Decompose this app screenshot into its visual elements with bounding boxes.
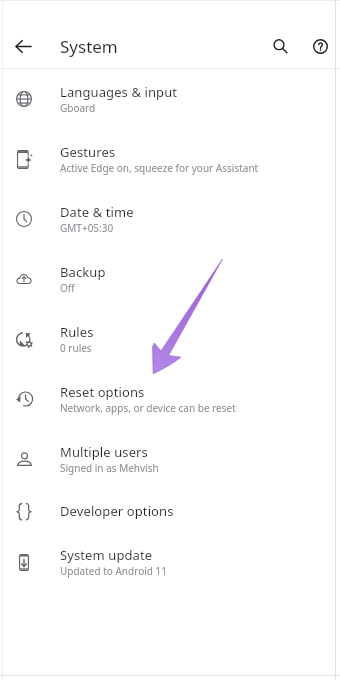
button[interactable]: Help [302, 28, 339, 65]
staticText: GMT+05:30 [60, 221, 114, 235]
button[interactable]: Backup [0, 249, 340, 309]
staticText: Languages & input [60, 83, 178, 101]
staticText: Reset options [60, 383, 145, 401]
staticText: Date & time [60, 203, 134, 221]
staticText: System update [60, 546, 153, 564]
button[interactable]: System update [0, 532, 340, 592]
staticText: Rules [60, 323, 94, 341]
button[interactable]: Gestures [0, 129, 340, 189]
staticText: Multiple users [60, 443, 148, 461]
staticText: Backup [60, 263, 106, 281]
button[interactable]: Developer options [0, 489, 340, 532]
button[interactable]: Back [5, 28, 42, 65]
staticText: Gboard [60, 101, 96, 115]
button[interactable]: Date & time [0, 189, 340, 249]
staticText: Network, apps, or device can be reset [60, 401, 236, 415]
staticText: Developer options [60, 502, 174, 520]
button[interactable]: Reset options [0, 369, 340, 429]
staticText: 0 rules [60, 341, 92, 355]
staticText: Gestures [60, 143, 116, 161]
staticText: System [60, 35, 118, 58]
staticText: Signed in as Mehvish [60, 461, 159, 475]
staticText: Off [60, 281, 75, 295]
button[interactable]: Languages & input [0, 69, 340, 129]
button[interactable]: Search [262, 28, 299, 65]
button[interactable]: Multiple users [0, 429, 340, 489]
button[interactable]: Rules [0, 309, 340, 369]
staticText: Updated to Android 11 [60, 564, 167, 578]
staticText: Active Edge on, squeeze for your Assista… [60, 161, 259, 175]
